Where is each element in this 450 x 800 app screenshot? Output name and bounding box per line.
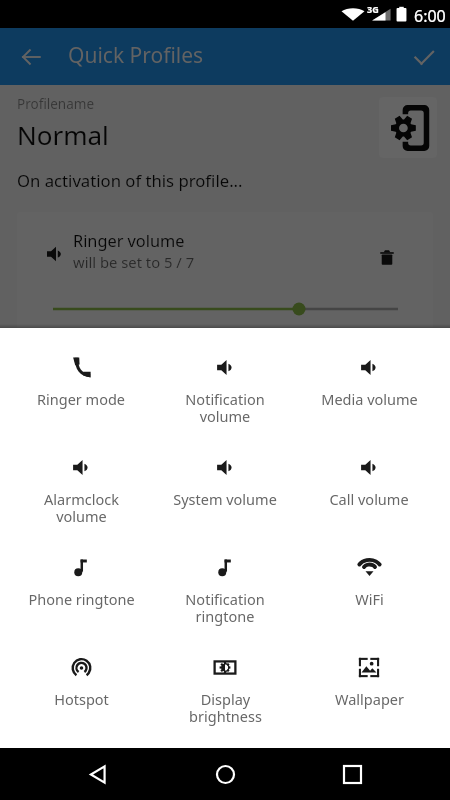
staticText: Wallpaper: [335, 689, 404, 709]
staticText: Profilename: [17, 95, 95, 113]
staticText: On activation of this profile...: [17, 169, 243, 192]
button[interactable]: Media volume: [297, 328, 441, 428]
staticText: Normal: [17, 117, 109, 152]
button[interactable]: Hotspot: [9, 628, 153, 728]
button[interactable]: Profile settings: [379, 97, 437, 158]
button[interactable]: Save: [404, 37, 444, 77]
button[interactable]: Phone ringtone: [9, 528, 153, 628]
button[interactable]: Notification ringtone: [153, 528, 297, 628]
button[interactable]: Alarmclock volume: [9, 428, 153, 528]
button[interactable]: Call volume: [297, 428, 441, 528]
staticText: WiFi: [355, 589, 384, 609]
staticText: 6:00: [414, 5, 446, 27]
button[interactable]: Ringer volume: [17, 212, 433, 337]
staticText: will be set to 5 / 7: [73, 252, 195, 272]
staticText: Display brightness: [189, 689, 262, 726]
staticText: Hotspot: [54, 689, 109, 709]
button[interactable]: WiFi: [297, 528, 441, 628]
button[interactable]: Display brightness: [153, 628, 297, 728]
staticText: Quick Profiles: [68, 41, 204, 70]
staticText: 3G: [367, 3, 379, 15]
button[interactable]: Ringer mode: [9, 328, 153, 428]
button[interactable]: Recents: [328, 748, 376, 800]
staticText: Ringer mode: [37, 389, 125, 409]
button[interactable]: Back: [74, 748, 122, 800]
staticText: Call volume: [329, 489, 409, 509]
staticText: Alarmclock volume: [44, 489, 119, 526]
staticText: System volume: [173, 489, 277, 509]
staticText: Media volume: [321, 389, 418, 409]
staticText: Notification volume: [185, 389, 265, 426]
button[interactable]: Notification volume: [153, 328, 297, 428]
button[interactable]: Wallpaper: [297, 628, 441, 728]
button[interactable]: Back: [11, 37, 51, 77]
staticText: Ringer volume: [73, 230, 185, 252]
button[interactable]: Delete: [367, 237, 407, 277]
button[interactable]: Home: [201, 748, 249, 800]
button[interactable]: System volume: [153, 428, 297, 528]
staticText: Notification ringtone: [185, 589, 265, 626]
staticText: Phone ringtone: [28, 589, 135, 609]
